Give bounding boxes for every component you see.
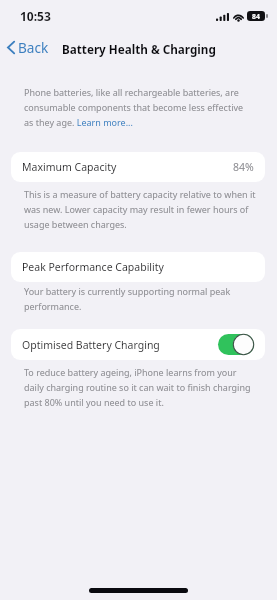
button[interactable]: Maximum Capacity [11,152,265,182]
staticText: 10:53 [20,8,51,24]
staticText: Your battery is currently supporting nor… [24,285,258,312]
staticText: To reduce battery ageing, iPhone learns … [24,366,258,408]
button[interactable]: Back [4,38,52,57]
staticText: Battery Health & Charging [62,41,216,57]
staticText: Phone batteries, like all rechargeable b… [24,86,250,128]
staticText: Optimised Battery Charging [22,338,160,352]
staticText: This is a measure of battery capacity re… [24,188,258,230]
staticText: 84% [233,160,254,174]
staticText: Maximum Capacity [22,160,117,174]
button[interactable]: Optimised Battery Charging [218,334,254,355]
button[interactable]: Optimised Battery Charging [11,329,265,360]
staticText: Back [18,38,49,57]
staticText: 84 [252,12,260,21]
staticText: Peak Performance Capability [22,260,164,274]
button[interactable]: Peak Performance Capability [11,252,265,282]
